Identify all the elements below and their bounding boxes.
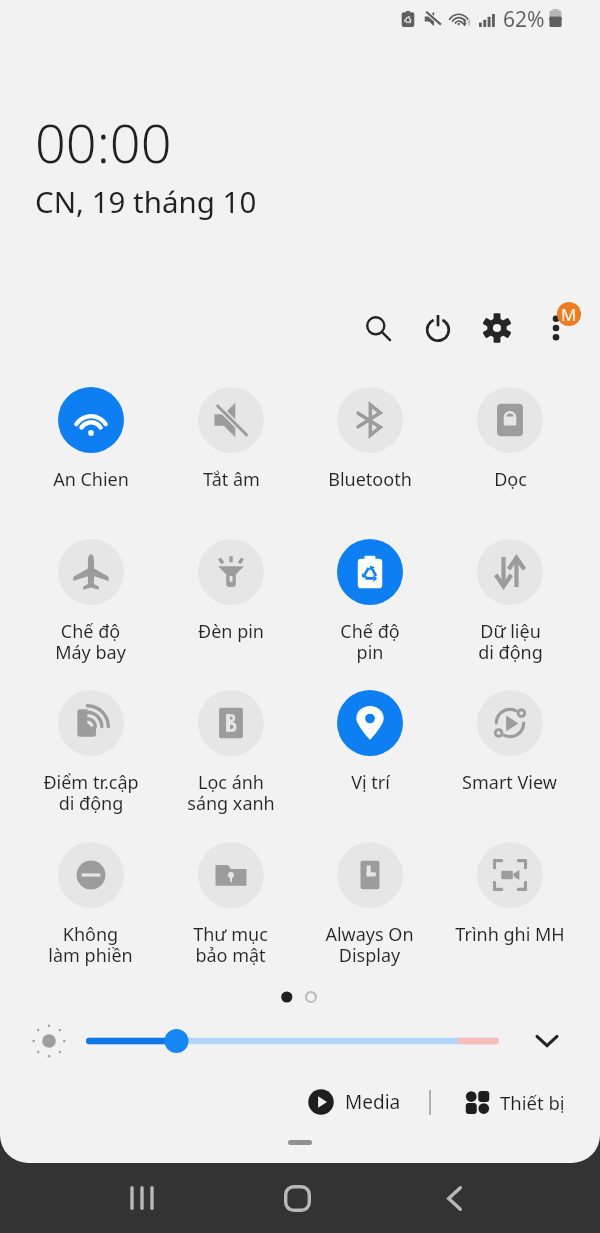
- button[interactable]: Đèn pin: [161, 533, 300, 669]
- staticText: 00:00: [35, 105, 172, 179]
- staticText: CN, 19 tháng 10: [35, 181, 257, 221]
- button[interactable]: Tắt âm: [161, 381, 300, 517]
- staticText: Vị trí: [351, 770, 390, 795]
- staticText: Bluetooth: [328, 467, 412, 492]
- staticText: Chế độ Máy bay: [55, 619, 126, 665]
- button[interactable]: Recents: [103, 1163, 181, 1233]
- button[interactable]: Expand: [525, 1019, 569, 1063]
- staticText: Chế độ pin: [340, 619, 400, 665]
- staticText: An Chien: [53, 467, 129, 492]
- staticText: Trình ghi MH: [455, 922, 565, 947]
- staticText: Media: [345, 1089, 401, 1115]
- button[interactable]: Điểm tr.cập di động: [21, 684, 160, 820]
- button[interactable]: More options: [532, 304, 580, 352]
- staticText: Thiết bị: [500, 1090, 565, 1115]
- button[interactable]: Không làm phiền: [21, 836, 160, 972]
- button[interactable]: Bluetooth: [300, 381, 439, 517]
- button[interactable]: Search: [358, 308, 398, 348]
- button[interactable]: Media: [300, 1080, 409, 1124]
- button[interactable]: Chế độ pin: [300, 533, 439, 669]
- staticText: Không làm phiền: [48, 922, 133, 968]
- button[interactable]: Thư mục bảo mật: [161, 836, 300, 972]
- staticText: Lọc ánh sáng xanh: [187, 770, 275, 816]
- button[interactable]: Home: [258, 1163, 336, 1233]
- button[interactable]: Chế độ Máy bay: [21, 533, 160, 669]
- button[interactable]: Dữ liệu di động: [440, 533, 579, 669]
- staticText: Dữ liệu di động: [478, 619, 543, 665]
- button[interactable]: Dọc: [440, 381, 579, 517]
- button[interactable]: Smart View: [440, 684, 579, 820]
- staticText: Đèn pin: [198, 619, 264, 644]
- staticText: Always On Display: [325, 922, 414, 968]
- staticText: Thư mục bảo mật: [193, 922, 268, 968]
- button[interactable]: Settings: [476, 307, 518, 349]
- button[interactable]: Lọc ánh sáng xanh: [161, 684, 300, 820]
- button[interactable]: Thiết bị: [457, 1080, 573, 1124]
- button[interactable]: Power off: [417, 307, 459, 349]
- button[interactable]: Always On Display: [300, 836, 439, 972]
- staticText: Tắt âm: [203, 467, 260, 492]
- staticText: 62%: [503, 5, 545, 34]
- staticText: Dọc: [494, 467, 527, 492]
- button[interactable]: Trình ghi MH: [440, 836, 579, 972]
- staticText: Smart View: [462, 770, 557, 795]
- staticText: M: [561, 303, 577, 326]
- button[interactable]: Back: [415, 1163, 493, 1233]
- button[interactable]: Vị trí: [300, 684, 439, 820]
- staticText: Điểm tr.cập di động: [43, 770, 139, 816]
- button[interactable]: An Chien: [21, 381, 160, 517]
- button[interactable]: [74, 1020, 511, 1062]
